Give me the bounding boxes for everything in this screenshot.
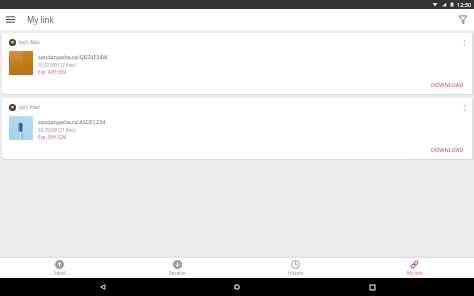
button[interactable]: My link <box>355 258 474 278</box>
staticText: 10.97 MB (12 files) <box>38 62 76 68</box>
button[interactable]: Back <box>95 279 111 295</box>
staticText: Joy's iMac <box>19 39 40 45</box>
button[interactable]: History <box>236 258 355 278</box>
staticText: My link <box>407 270 423 276</box>
staticText: 29.35 MB (31 files) <box>38 127 76 133</box>
button[interactable]: Joy's iMac <box>2 33 472 94</box>
button[interactable]: More options <box>459 37 470 48</box>
staticText: 12:30 <box>457 1 472 8</box>
button[interactable]: DOWNLOAD <box>423 75 472 94</box>
staticText: Exp. 36H 32M <box>38 134 67 140</box>
button[interactable]: Recent apps <box>364 279 380 295</box>
staticText: Joy's Pixel <box>19 104 40 110</box>
staticText: sendanywhe.re/QR76F54W <box>38 53 108 60</box>
staticText: My link <box>27 14 54 25</box>
button[interactable]: Send <box>0 258 118 278</box>
button[interactable]: More options <box>459 102 470 113</box>
button[interactable]: Receive <box>118 258 236 278</box>
staticText: Exp. 47H 55M <box>38 69 67 75</box>
staticText: DOWNLOAD <box>431 81 464 88</box>
staticText: DOWNLOAD <box>431 146 464 153</box>
staticText: sendanywhe.re/ASDF1234 <box>38 118 106 125</box>
button[interactable]: Home <box>229 279 245 295</box>
staticText: Receive <box>169 270 186 276</box>
button[interactable]: Joy's Pixel <box>2 98 472 159</box>
button[interactable]: Open navigation drawer <box>0 9 21 30</box>
staticText: History <box>288 270 304 276</box>
button[interactable]: DOWNLOAD <box>423 140 472 159</box>
button[interactable]: Filter <box>452 9 473 30</box>
staticText: Send <box>54 270 65 276</box>
